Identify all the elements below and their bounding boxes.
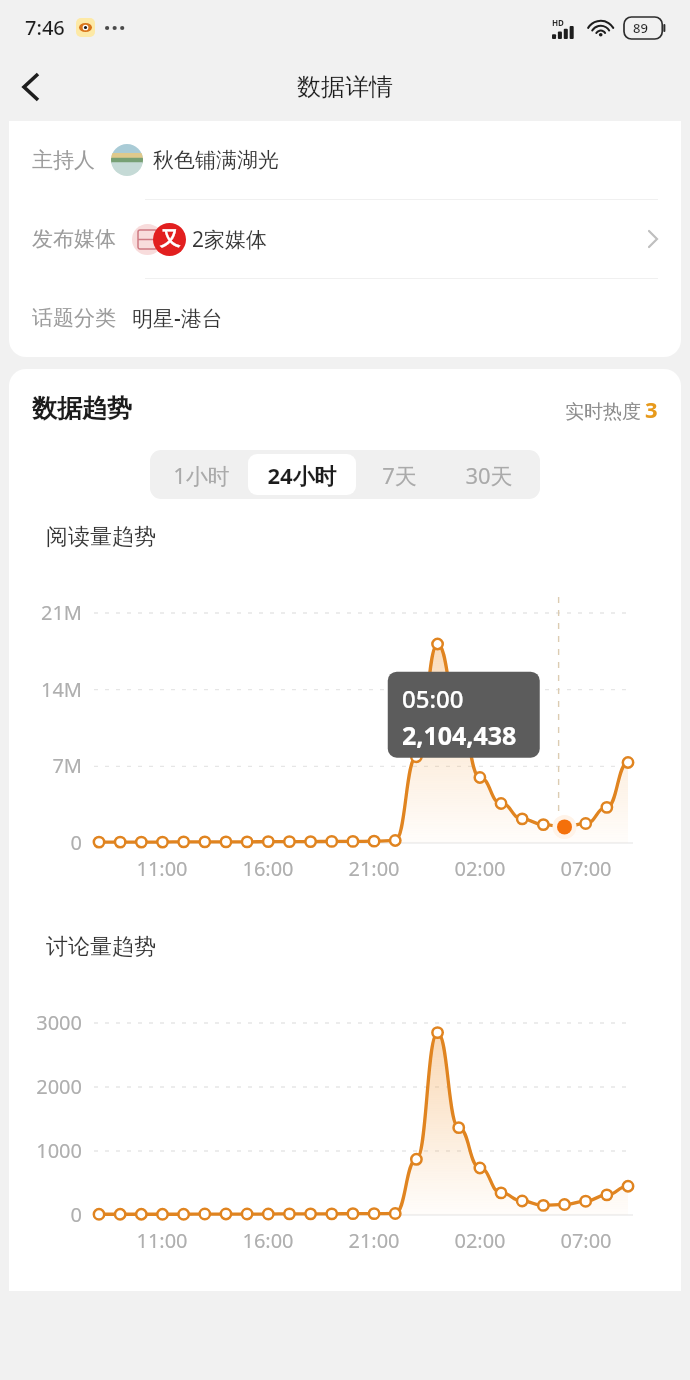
staticText: 又	[160, 227, 180, 252]
staticText: 讨论量趋势	[46, 933, 156, 961]
staticText: 02:00	[454, 1227, 506, 1254]
staticText: 0	[70, 1201, 82, 1228]
staticText: 11:00	[136, 855, 188, 882]
staticText: 21M	[40, 599, 82, 626]
button[interactable]: 24小时	[248, 454, 356, 495]
staticText: 16:00	[242, 1227, 294, 1254]
staticText: 2,104,438	[402, 718, 517, 752]
staticText: 2家媒体	[192, 225, 268, 254]
staticText: 主持人	[32, 147, 95, 173]
staticText: 2000	[36, 1073, 82, 1100]
staticText: 1小时	[173, 460, 230, 490]
button[interactable]: 发布媒体	[9, 200, 681, 279]
staticText: 16:00	[242, 855, 294, 882]
button[interactable]: 30天	[442, 454, 536, 495]
button[interactable]: Back	[6, 63, 54, 111]
staticText: 数据趋势	[32, 393, 132, 424]
staticText: 1000	[36, 1137, 82, 1164]
staticText: 21:00	[348, 855, 400, 882]
button[interactable]: 7天	[356, 454, 442, 495]
staticText: 秋色铺满湖光	[153, 147, 279, 173]
staticText: 7:46	[25, 14, 65, 41]
staticText: 3000	[36, 1009, 82, 1036]
staticText: 阅读量趋势	[46, 523, 156, 551]
staticText: 明星-港台	[132, 304, 223, 333]
staticText: 7M	[52, 752, 82, 779]
staticText: 24小时	[267, 460, 337, 490]
staticText: 发布媒体	[32, 226, 116, 252]
staticText: 07:00	[560, 855, 612, 882]
staticText: 07:00	[560, 1227, 612, 1254]
button[interactable]: 1小时	[154, 454, 248, 495]
staticText: 89	[633, 19, 648, 37]
staticText: HD	[552, 17, 564, 28]
staticText: 11:00	[136, 1227, 188, 1254]
staticText: 21:00	[348, 1227, 400, 1254]
staticText: 05:00	[402, 682, 464, 715]
staticText: 30天	[465, 460, 513, 490]
staticText: 02:00	[454, 855, 506, 882]
staticText: 3	[645, 394, 658, 424]
staticText: 7天	[382, 460, 417, 490]
staticText: 话题分类	[32, 305, 116, 331]
staticText: 数据详情	[297, 72, 393, 102]
staticText: 14M	[40, 676, 82, 703]
staticText: 0	[70, 829, 82, 856]
staticText: 实时热度	[565, 400, 641, 424]
